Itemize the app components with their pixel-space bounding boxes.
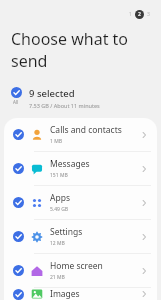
staticText: 12 MB	[50, 240, 65, 247]
staticText: 151 MB	[50, 172, 68, 179]
staticText: Calls and contacts	[50, 124, 122, 136]
staticText: 3	[147, 11, 150, 18]
button[interactable]: Images	[4, 288, 157, 300]
staticText: 1 MB	[50, 138, 62, 145]
staticText: Choose what to send	[11, 28, 155, 72]
staticText: 21 MB	[50, 274, 65, 281]
other: Open Calls and contacts	[138, 129, 150, 141]
staticText: All	[13, 99, 19, 105]
staticText: 2	[138, 11, 141, 18]
button[interactable]: All	[0, 87, 161, 109]
staticText: Home screen	[50, 260, 103, 272]
other: Open Messages	[138, 163, 150, 175]
staticText: 9 selected	[29, 87, 75, 100]
other: Open Settings	[138, 231, 150, 243]
button[interactable]: Calls and contacts	[4, 118, 157, 151]
button[interactable]: Home screen	[4, 254, 157, 287]
staticText: Messages	[50, 158, 90, 170]
staticText: 5.49 GB	[50, 206, 69, 213]
staticText: Apps	[50, 192, 70, 204]
button[interactable]: Settings	[4, 220, 157, 253]
staticText: 7.53 GB / About 11 minutes	[29, 102, 100, 109]
other: Open Images	[138, 288, 150, 300]
button[interactable]: Apps	[4, 186, 157, 219]
other: Open Home screen	[138, 265, 150, 277]
staticText: Images	[50, 288, 80, 300]
other: Open Apps	[138, 197, 150, 209]
button[interactable]: Messages	[4, 152, 157, 185]
staticText: 1	[129, 11, 132, 18]
staticText: Settings	[50, 226, 83, 238]
